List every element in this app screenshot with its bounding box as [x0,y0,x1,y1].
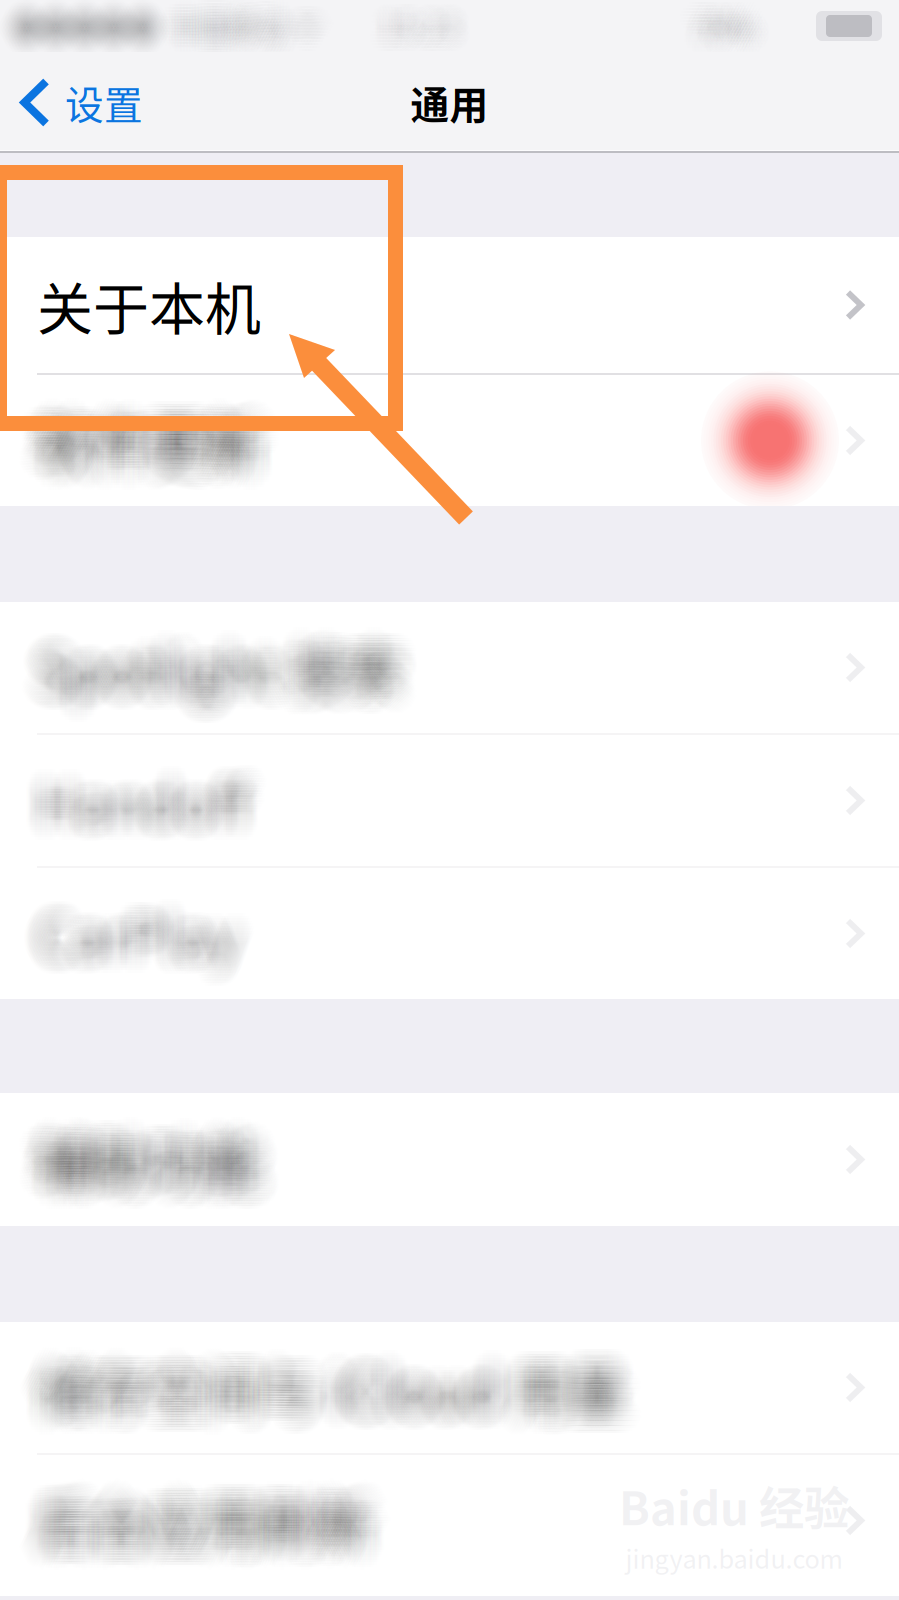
staticText: CarPlay [44,898,246,979]
staticText: 15:23 [366,10,443,54]
staticText: 后台应用刷新 [64,1490,400,1571]
staticText: CarPlay [46,900,248,982]
staticText: Handoff [51,727,263,809]
staticText: Spotlight 搜索 [21,614,386,696]
button[interactable]: CarPlay [0,868,899,999]
staticText: 储存空间与 iCloud 用量 [23,1379,611,1461]
staticText: 储存空间与 iCloud 用量 [59,1377,647,1458]
staticText: 软件更新 [74,400,298,481]
staticText: 辅助功能 [41,1146,265,1228]
staticText: Handoff [67,755,279,836]
staticText: CarPlay [17,868,219,949]
staticText: 辅助功能 [33,1091,257,1173]
staticText: Handoff [73,752,285,834]
staticText: 软件更新 [21,377,245,459]
staticText: 软件更新 [14,390,238,471]
staticText: Spotlight 搜索 [18,634,383,716]
staticText: Spotlight 搜索 [38,619,403,701]
staticText: 辅助功能 [1,1116,225,1198]
staticText: 软件更新 [29,435,253,516]
staticText: 辅助功能 [66,1126,290,1208]
staticText: 软件更新 [47,385,271,466]
staticText: Spotlight 搜索 [52,607,417,688]
staticText: 辅助功能 [12,1124,236,1205]
staticText: ●●●●● 中国移动 ᯤ [25,0,334,38]
staticText: 储存空间与 iCloud 用量 [4,1357,592,1438]
staticText: 储存空间与 iCloud 用量 [63,1349,651,1431]
staticText: 后台应用刷新 [52,1490,388,1571]
staticText: CarPlay [23,870,225,952]
staticText: 后台应用刷新 [13,1462,349,1544]
staticText: Handoff [13,742,225,824]
staticText: Handoff [53,737,265,819]
staticText: 70% [702,0,761,38]
staticText: 软件更新 [38,367,262,449]
staticText: Spotlight 搜索 [32,652,397,733]
staticText: ●●●●● 中国移动 ᯤ [13,8,322,50]
staticText: ●●●●● 中国移动 ᯤ [18,0,327,29]
button[interactable]: 关于本机 [0,237,899,373]
button[interactable]: 后台应用刷新 [0,1455,899,1586]
staticText: 储存空间与 iCloud 用量 [56,1379,644,1461]
staticText: 储存空间与 iCloud 用量 [46,1314,634,1396]
staticText: Spotlight 搜索 [28,629,393,711]
staticText: Spotlight 搜索 [54,622,419,703]
staticText: 软件更新 [48,407,272,489]
staticText: 后台应用刷新 [72,1485,408,1566]
staticText: 软件更新 [54,400,278,481]
staticText: 后台应用刷新 [6,1467,342,1549]
staticText: 后台应用刷新 [38,1497,374,1579]
staticText: 后台应用刷新 [66,1477,402,1559]
staticText: CarPlay [1,895,203,977]
staticText: CarPlay [1,890,203,972]
button[interactable]: 软件更新 [0,375,899,506]
button[interactable]: Spotlight 搜索 [0,602,899,733]
staticText: 辅助功能 [42,1119,266,1200]
button[interactable]: 设置 [0,52,161,153]
staticText: Spotlight 搜索 [58,599,423,681]
staticText: 软件更新 [47,400,271,481]
staticText: 辅助功能 [21,1101,245,1183]
staticText: ●●●●● 中国移动 ᯤ [6,0,315,35]
staticText: 70% [677,0,736,29]
staticText: 储存空间与 iCloud 用量 [52,1357,640,1438]
staticText: 15:23 [393,22,470,66]
staticText: Spotlight 搜索 [57,657,422,738]
button[interactable]: Handoff [0,735,899,866]
staticText: 软件更新 [23,412,247,494]
staticText: CarPlay [31,865,233,947]
staticText: 辅助功能 [59,1094,283,1175]
staticText: 后台应用刷新 [8,1497,344,1579]
staticText: 15:23 [364,0,441,39]
staticText: CarPlay [46,880,248,962]
staticText: CarPlay [62,883,264,964]
staticText: 软件更新 [27,380,251,461]
staticText: CarPlay [26,885,228,967]
staticText: CarPlay [69,883,271,964]
staticText: 储存空间与 iCloud 用量 [23,1339,611,1421]
staticText: Spotlight 搜索 [36,619,401,701]
staticText: 辅助功能 [42,1109,266,1190]
button[interactable]: 储存空间与 iCloud 用量 [0,1322,899,1453]
staticText: 后台应用刷新 [54,1450,390,1531]
staticText: 辅助功能 [66,1116,290,1198]
staticText: 软件更新 [37,370,261,451]
staticText: 辅助功能 [27,1139,251,1220]
staticText: 后台应用刷新 [12,1470,348,1551]
staticText: 软件更新 [47,415,271,496]
staticText: Handoff [24,765,236,846]
staticText: 辅助功能 [32,1099,256,1180]
staticText: 储存空间与 iCloud 用量 [46,1364,634,1446]
staticText: 储存空间与 iCloud 用量 [12,1347,600,1428]
staticText: 储存空间与 iCloud 用量 [43,1324,631,1406]
staticText: Spotlight 搜索 [39,627,404,708]
staticText: 15:23 [376,19,453,63]
staticText: 辅助功能 [63,1131,287,1213]
button[interactable]: 辅助功能 [0,1093,899,1226]
staticText: CarPlay [32,883,234,964]
staticText: CarPlay [37,913,239,994]
staticText: 储存空间与 iCloud 用量 [29,1357,617,1438]
staticText: 后台应用刷新 [62,1480,398,1561]
staticText: 后台应用刷新 [39,1450,375,1531]
staticText: 软件更新 [73,392,297,474]
